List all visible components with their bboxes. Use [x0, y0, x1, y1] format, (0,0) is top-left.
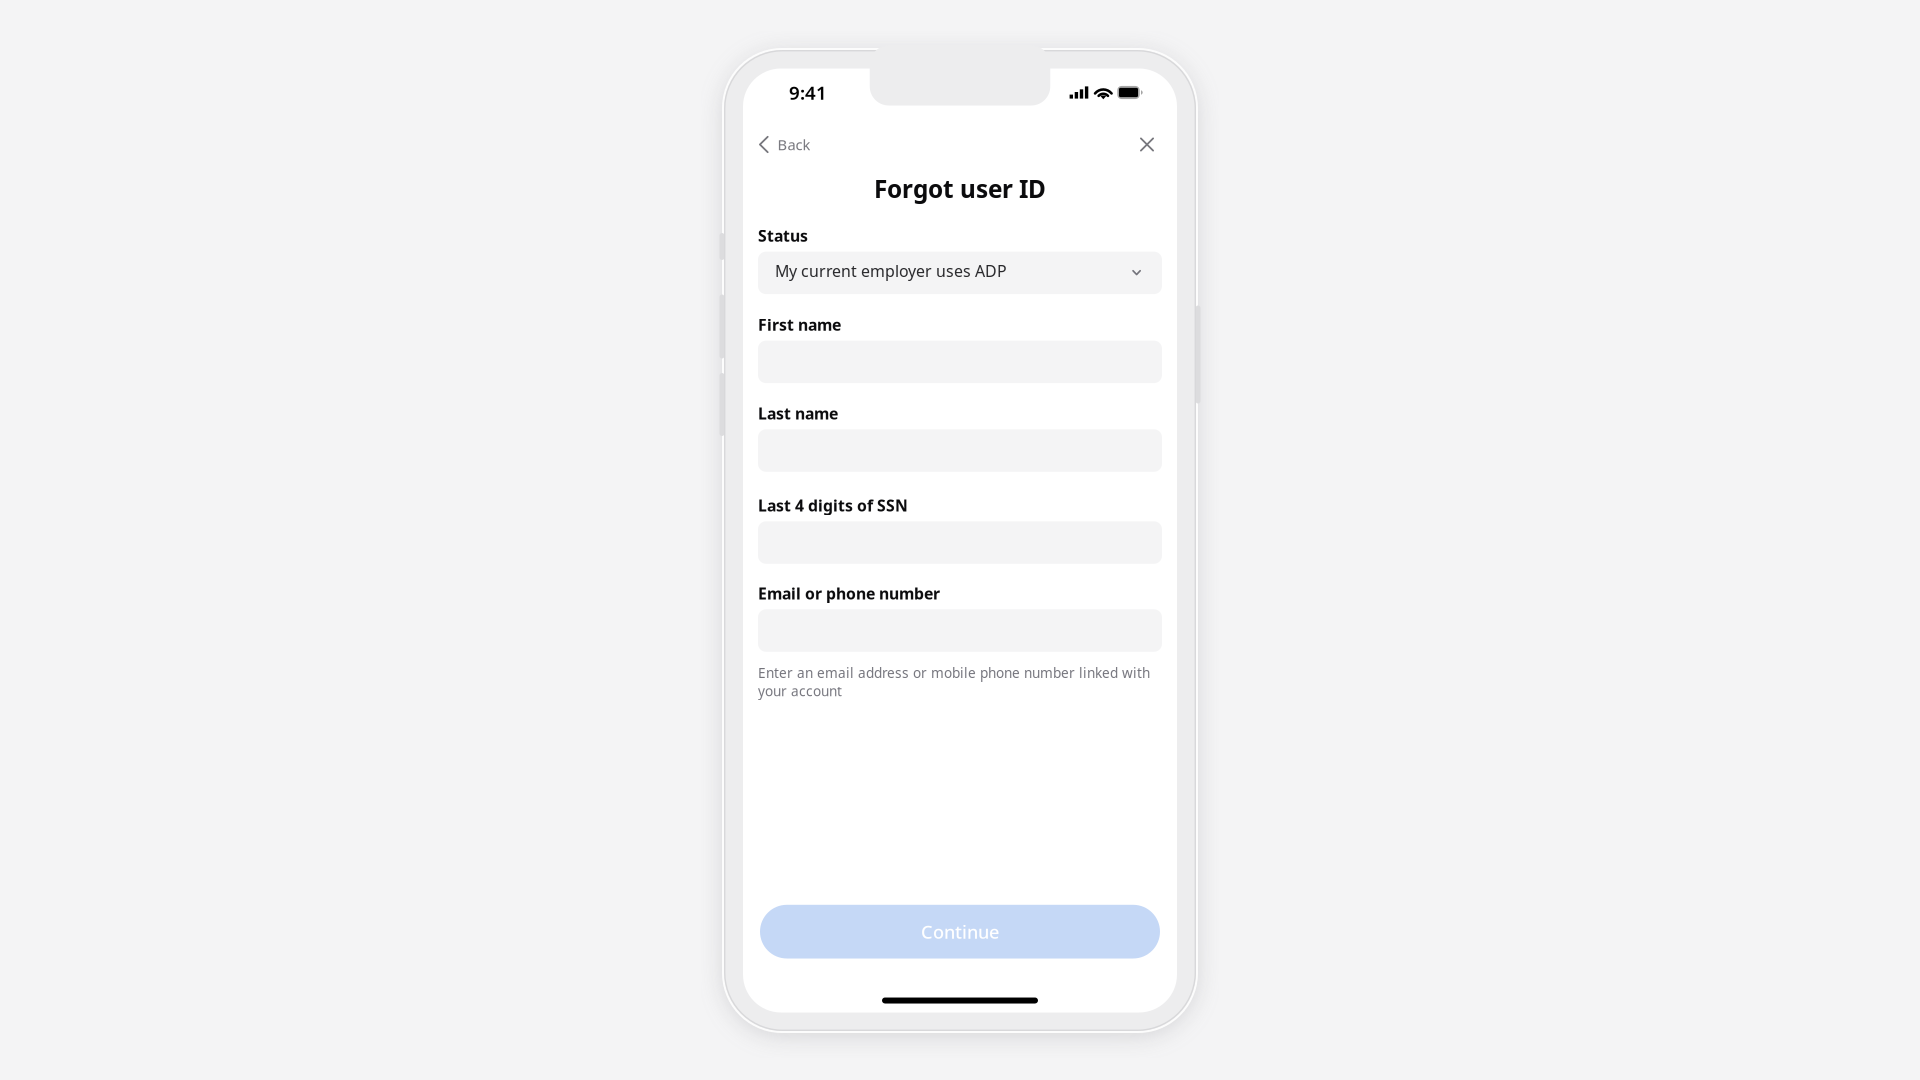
- staticText: Back: [777, 135, 810, 154]
- staticText: Continue: [921, 920, 999, 944]
- staticText: Enter an email address or mobile phone n…: [758, 664, 1150, 700]
- staticText: Last 4 digits of SSN: [758, 495, 908, 516]
- staticText: Email or phone number: [758, 583, 940, 604]
- staticText: Last name: [758, 403, 838, 424]
- button[interactable]: My current employer uses ADP: [758, 252, 1162, 294]
- staticText: Forgot user ID: [874, 172, 1046, 205]
- staticText: 9:41: [789, 80, 827, 105]
- staticText: Status: [758, 225, 808, 246]
- button[interactable]: Continue: [760, 905, 1160, 958]
- button[interactable]: Close: [1128, 129, 1177, 159]
- staticText: First name: [758, 314, 841, 335]
- staticText: My current employer uses ADP: [775, 260, 1007, 281]
- button[interactable]: Back: [743, 127, 820, 162]
